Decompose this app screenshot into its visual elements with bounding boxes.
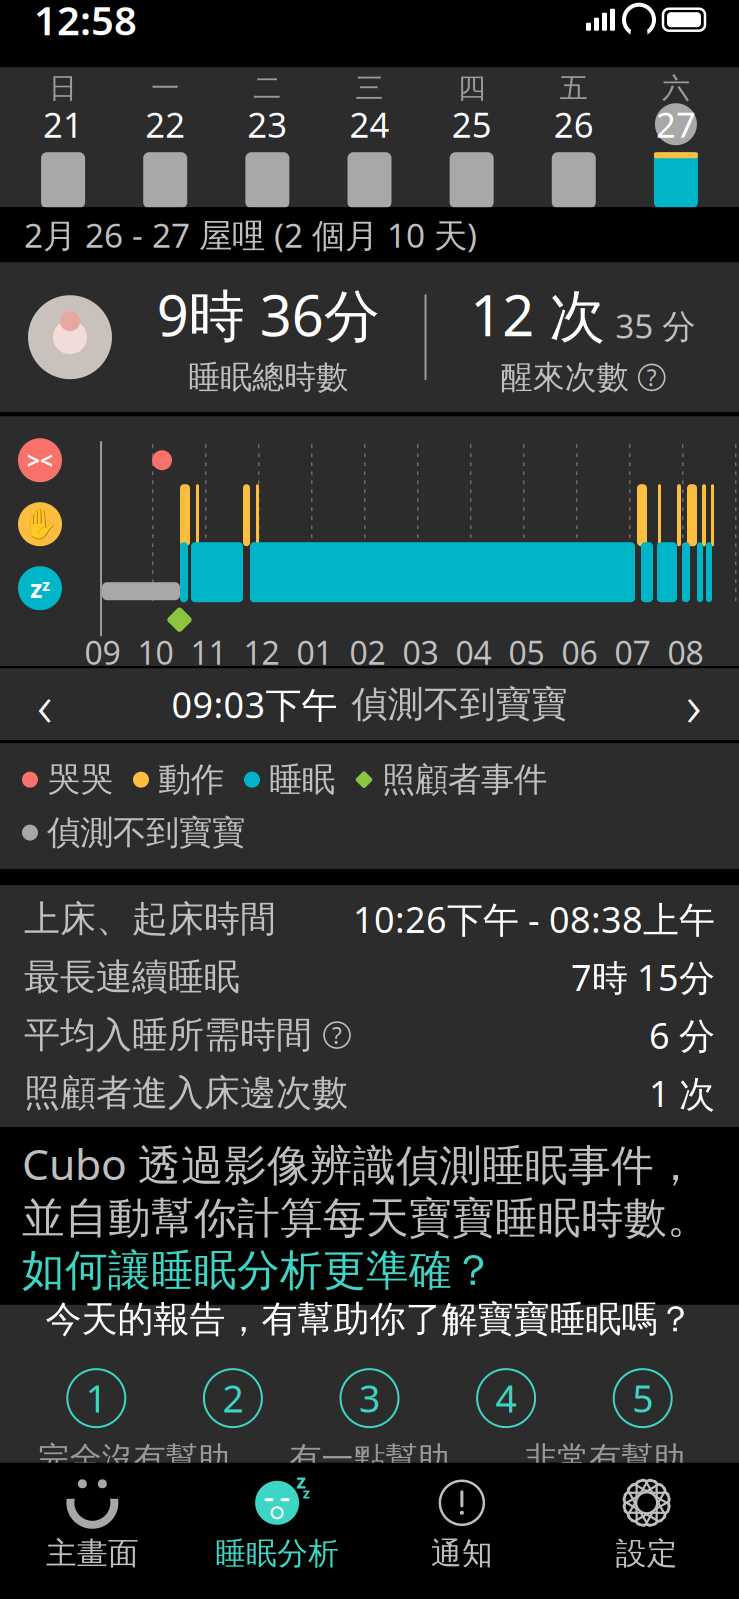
button[interactable]: 三: [318, 74, 420, 208]
staticText: 主畫面: [46, 1535, 139, 1572]
staticText: 2月 26 - 27 屋哩 (2 個月 10 天): [24, 213, 477, 257]
staticText: z: [303, 1483, 310, 1503]
staticText: ‹: [37, 665, 53, 743]
staticText: 02: [349, 631, 385, 674]
staticText: 9時 36分: [157, 277, 380, 352]
staticText: 24: [349, 101, 389, 147]
staticText: 睡眠: [269, 759, 335, 800]
staticText: 有一點幫助: [289, 1439, 449, 1478]
staticText: 4: [496, 1373, 517, 1423]
staticText: 一: [151, 71, 179, 105]
staticText: 三: [355, 71, 383, 105]
button[interactable]: 六: [625, 74, 727, 208]
staticText: 10:26下午 - 08:38上午: [353, 895, 715, 943]
staticText: 睡眠總時數: [188, 358, 348, 397]
button[interactable]: 四: [421, 74, 523, 208]
staticText: ?: [332, 1020, 342, 1050]
button[interactable]: z: [185, 1469, 370, 1580]
staticText: 08: [667, 631, 703, 674]
button[interactable]: 一: [114, 74, 216, 208]
button[interactable]: 如何讓睡眠分析更準確？: [22, 1244, 717, 1297]
staticText: 12: [243, 631, 279, 674]
staticText: 5: [632, 1373, 653, 1423]
staticText: 動作: [158, 759, 224, 800]
staticText: ?: [647, 362, 657, 392]
staticText: 五: [560, 71, 588, 105]
staticText: 26: [554, 101, 594, 147]
staticText: 01: [296, 631, 332, 674]
staticText: 最長連續睡眠: [24, 955, 240, 999]
staticText: 睡眠分析: [215, 1535, 339, 1572]
staticText: 35 分: [615, 303, 695, 348]
button[interactable]: 主畫面: [0, 1469, 185, 1580]
staticText: 如何讓睡眠分析更準確？: [22, 1244, 495, 1297]
staticText: ><: [27, 445, 53, 475]
staticText: z: [296, 1467, 306, 1494]
staticText: 照顧者進入床邊次數: [24, 1071, 348, 1115]
staticText: 四: [458, 71, 486, 105]
staticText: 22: [145, 101, 185, 147]
staticText: 05: [508, 631, 544, 674]
staticText: 非常有幫助: [525, 1439, 685, 1478]
button[interactable]: 5: [614, 1369, 672, 1427]
staticText: 哭哭: [47, 759, 113, 800]
button[interactable]: Previous event: [0, 668, 90, 740]
button[interactable]: 二: [216, 74, 318, 208]
staticText: 2: [222, 1373, 243, 1423]
staticText: 09:03下午: [171, 680, 337, 728]
button[interactable]: 設定: [554, 1469, 739, 1580]
staticText: 醒來次數: [501, 358, 629, 397]
staticText: 平均入睡所需時間: [24, 1013, 312, 1057]
staticText: 上床、起床時間: [24, 897, 276, 941]
staticText: 10: [137, 631, 173, 674]
staticText: 設定: [616, 1535, 678, 1572]
staticText: 25: [452, 101, 492, 147]
staticText: 偵測不到寶寶: [351, 682, 567, 726]
staticText: 07: [614, 631, 650, 674]
staticText: 03: [402, 631, 438, 674]
button[interactable]: 通知: [369, 1469, 554, 1580]
staticText: 6 分: [649, 1011, 715, 1059]
staticText: 通知: [431, 1535, 493, 1572]
staticText: Cubo 透過影像辨識偵測睡眠事件，並自動幫你計算每天寶寶睡眠時數。: [22, 1135, 710, 1244]
button[interactable]: 五: [523, 74, 625, 208]
staticText: ✋: [21, 507, 58, 541]
staticText: 7時 15分: [571, 953, 715, 1001]
staticText: zᶻ: [30, 571, 50, 605]
staticText: 23: [247, 101, 287, 147]
staticText: ›: [686, 665, 702, 743]
staticText: 今天的報告，有幫助你了解寶寶睡眠嗎？: [45, 1297, 693, 1341]
staticText: 1 次: [649, 1069, 715, 1117]
staticText: 21: [43, 101, 83, 147]
button[interactable]: 1: [67, 1369, 125, 1427]
button[interactable]: 日: [12, 74, 114, 208]
staticText: 11: [190, 631, 226, 674]
staticText: 04: [455, 631, 491, 674]
staticText: 六: [662, 71, 690, 105]
staticText: 06: [561, 631, 597, 674]
staticText: 照顧者事件: [382, 759, 547, 800]
staticText: 二: [253, 71, 281, 105]
staticText: 09: [84, 631, 120, 674]
staticText: 偵測不到寶寶: [47, 812, 245, 853]
button[interactable]: Next event: [649, 668, 739, 740]
button[interactable]: 4: [477, 1369, 535, 1427]
staticText: 3: [359, 1373, 380, 1423]
staticText: 日: [49, 71, 77, 105]
button[interactable]: 3: [340, 1369, 398, 1427]
staticText: 完全沒有幫助: [38, 1439, 230, 1478]
staticText: 1: [86, 1373, 107, 1423]
staticText: 12 次: [470, 277, 605, 352]
staticText: 27: [656, 101, 696, 147]
staticText: 12:58: [34, 0, 137, 46]
button[interactable]: 2: [204, 1369, 262, 1427]
